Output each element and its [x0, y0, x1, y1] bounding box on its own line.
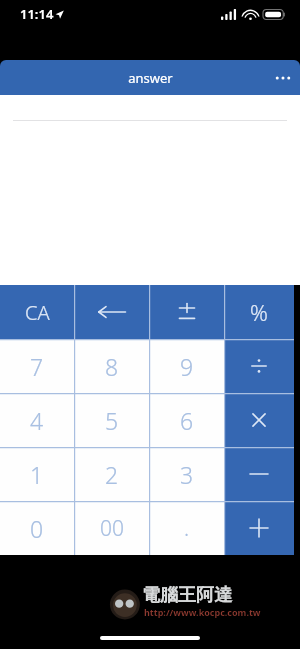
- button[interactable]: 2: [74, 447, 149, 501]
- button[interactable]: More options: [266, 60, 300, 95]
- staticText: .: [184, 514, 190, 543]
- button[interactable]: answer: [0, 60, 300, 95]
- staticText: 2: [105, 459, 119, 490]
- staticText: 1: [30, 459, 44, 490]
- staticText: 9: [180, 351, 194, 382]
- button[interactable]: .: [149, 501, 224, 555]
- staticText: 3: [180, 459, 194, 490]
- staticText: 8: [105, 351, 119, 382]
- button[interactable]: Plus minus: [149, 285, 224, 339]
- staticText: CA: [25, 299, 50, 326]
- button[interactable]: %: [224, 285, 294, 339]
- staticText: 7: [30, 351, 44, 382]
- button[interactable]: 7: [0, 339, 74, 393]
- button[interactable]: 6: [149, 393, 224, 447]
- button[interactable]: Subtract: [224, 447, 294, 501]
- staticText: 11:14: [20, 5, 54, 23]
- staticText: 4: [30, 405, 44, 436]
- button[interactable]: Divide: [224, 339, 294, 393]
- staticText: 電腦王阿達: [142, 584, 232, 607]
- staticText: %: [250, 297, 268, 327]
- button[interactable]: 1: [0, 447, 74, 501]
- button[interactable]: 5: [74, 393, 149, 447]
- button[interactable]: 9: [149, 339, 224, 393]
- staticText: http://www.kocpc.com.tw: [144, 606, 261, 618]
- button[interactable]: CA: [0, 285, 74, 339]
- button[interactable]: 8: [74, 339, 149, 393]
- staticText: 5: [105, 405, 119, 436]
- button[interactable]: 4: [0, 393, 74, 447]
- button[interactable]: Multiply: [224, 393, 294, 447]
- button[interactable]: Backspace: [74, 285, 149, 339]
- staticText: 6: [180, 405, 194, 436]
- staticText: 0: [30, 513, 44, 544]
- button[interactable]: 3: [149, 447, 224, 501]
- staticText: 00: [100, 514, 124, 543]
- button[interactable]: 00: [74, 501, 149, 555]
- button[interactable]: 0: [0, 501, 74, 555]
- staticText: answer: [128, 69, 173, 87]
- button[interactable]: Add: [224, 501, 294, 555]
